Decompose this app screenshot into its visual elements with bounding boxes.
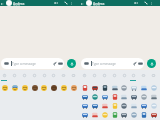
- button[interactable]: Emoji: [151, 85, 157, 91]
- other: Emoji: [4, 61, 9, 66]
- button[interactable]: Back: [80, 2, 84, 6]
- button[interactable]: Back: [0, 2, 4, 6]
- button[interactable]: Emoji: [112, 112, 118, 118]
- button[interactable]: Emoji category 5: [41, 72, 48, 79]
- button[interactable]: Emoji: [51, 85, 57, 91]
- button[interactable]: Emoji: [141, 94, 147, 100]
- other: Camera: [138, 61, 143, 66]
- button[interactable]: Emoji category 4: [111, 72, 118, 79]
- other: Camera: [58, 61, 63, 66]
- button[interactable]: Voice message: [147, 59, 156, 68]
- button[interactable]: Emoji: [92, 103, 98, 109]
- button[interactable]: Emoji: [131, 103, 137, 109]
- button[interactable]: Emoji: [141, 112, 147, 118]
- button[interactable]: Emoji: [121, 85, 127, 91]
- staticText: Andrea: [13, 1, 25, 5]
- button[interactable]: Emoji: [131, 94, 137, 100]
- button[interactable]: Emoji: [141, 103, 147, 109]
- staticText: Type a message: [92, 62, 116, 66]
- button[interactable]: Emoji: [82, 112, 88, 118]
- button[interactable]: Emoji: [121, 103, 127, 109]
- button[interactable]: Emoji: [121, 94, 127, 100]
- button[interactable]: Video call: [54, 1, 58, 5]
- button[interactable]: Emoji: [61, 85, 67, 91]
- button[interactable]: Emoji category 3: [101, 72, 108, 79]
- button[interactable]: Emoji: [81, 58, 144, 69]
- staticText: Type a message: [12, 62, 36, 66]
- other: Emoji: [84, 61, 89, 66]
- button[interactable]: Emoji: [112, 94, 118, 100]
- button[interactable]: Emoji: [82, 85, 88, 91]
- button[interactable]: Emoji: [151, 103, 157, 109]
- button[interactable]: Emoji category 6: [130, 72, 137, 79]
- button[interactable]: Emoji category 4: [31, 72, 38, 79]
- button[interactable]: Emoji: [92, 85, 98, 91]
- button[interactable]: Emoji category 5: [121, 72, 128, 79]
- button[interactable]: Emoji category 8: [70, 72, 77, 79]
- button[interactable]: Emoji: [131, 112, 137, 118]
- button[interactable]: Emoji: [71, 85, 77, 91]
- staticText: Andrea: [93, 1, 105, 5]
- button[interactable]: Emoji: [131, 85, 137, 91]
- button[interactable]: Emoji: [92, 94, 98, 100]
- button[interactable]: Emoji category 6: [50, 72, 57, 79]
- button[interactable]: Voice message: [67, 59, 76, 68]
- button[interactable]: Contact photo: [6, 0, 12, 6]
- button[interactable]: Emoji: [112, 85, 118, 91]
- other: Attach: [53, 61, 58, 66]
- button[interactable]: Emoji category 7: [140, 72, 147, 79]
- button[interactable]: Voice call: [64, 1, 68, 5]
- button[interactable]: Emoji category 3: [21, 72, 28, 79]
- button[interactable]: Emoji: [82, 103, 88, 109]
- button[interactable]: Video call: [134, 1, 138, 5]
- button[interactable]: Emoji: [12, 85, 18, 91]
- button[interactable]: Emoji category 8: [150, 72, 157, 79]
- button[interactable]: Emoji: [121, 112, 127, 118]
- other: Attach: [133, 61, 138, 66]
- button[interactable]: Emoji category 2: [91, 72, 98, 79]
- button[interactable]: Emoji: [112, 103, 118, 109]
- button[interactable]: More options: [70, 2, 73, 5]
- button[interactable]: Emoji: [151, 112, 157, 118]
- button[interactable]: Voice call: [144, 1, 148, 5]
- button[interactable]: Emoji: [1, 58, 64, 69]
- button[interactable]: Emoji: [151, 94, 157, 100]
- button[interactable]: Emoji: [22, 85, 28, 91]
- button[interactable]: Emoji: [102, 103, 108, 109]
- button[interactable]: Emoji category 1: [1, 72, 8, 79]
- button[interactable]: Contact photo: [86, 0, 92, 6]
- button[interactable]: Emoji: [102, 112, 108, 118]
- button[interactable]: Emoji: [102, 94, 108, 100]
- button[interactable]: Emoji: [41, 85, 47, 91]
- button[interactable]: Emoji: [32, 85, 38, 91]
- button[interactable]: Emoji: [141, 85, 147, 91]
- button[interactable]: Emoji: [82, 94, 88, 100]
- button[interactable]: Emoji category 1: [81, 72, 88, 79]
- button[interactable]: Emoji: [102, 85, 108, 91]
- staticText: online: [93, 3, 100, 6]
- button[interactable]: Emoji category 2: [11, 72, 18, 79]
- button[interactable]: Emoji: [2, 85, 8, 91]
- staticText: online: [13, 3, 20, 6]
- button[interactable]: Emoji: [92, 112, 98, 118]
- button[interactable]: Emoji category 7: [60, 72, 67, 79]
- button[interactable]: More options: [150, 2, 153, 5]
